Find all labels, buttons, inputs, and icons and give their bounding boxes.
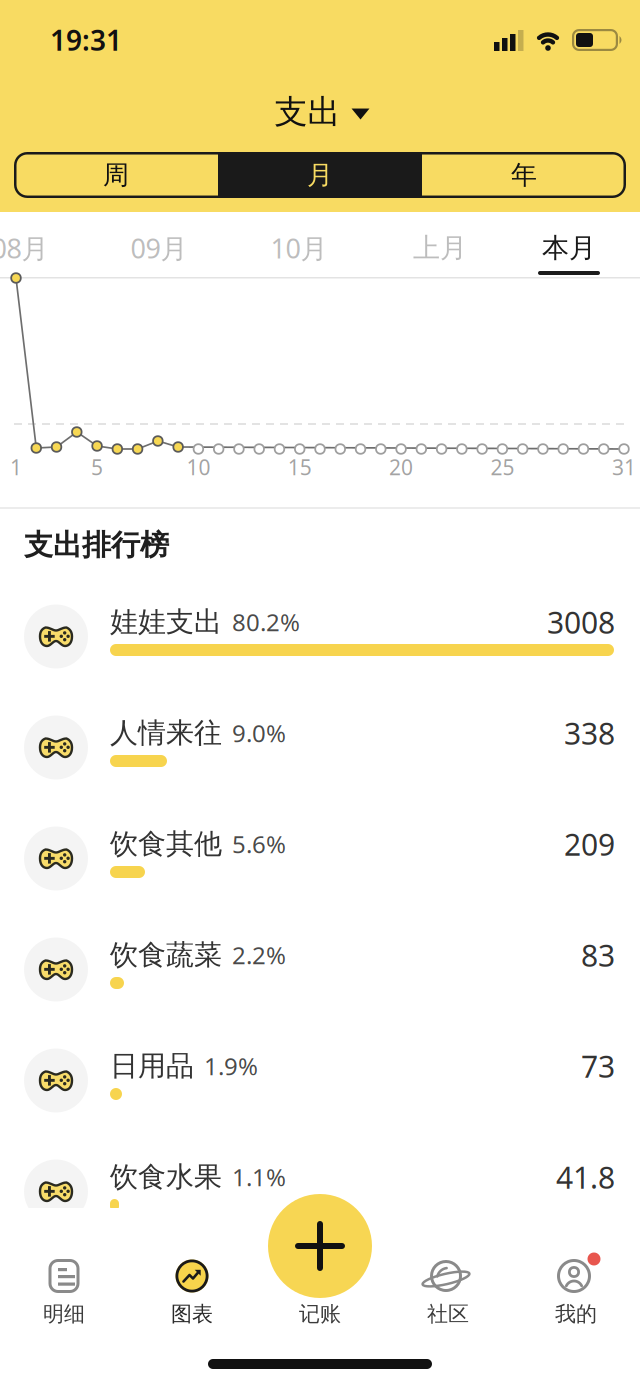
staticText: 09月 [130, 230, 187, 266]
staticText: 9.0% [232, 717, 286, 749]
staticText: 31 [612, 453, 636, 481]
staticText: 73 [581, 1046, 615, 1086]
staticText: 10 [186, 453, 210, 481]
button[interactable]: 年 [422, 152, 626, 198]
staticText: 19:31 [50, 21, 122, 59]
staticText: 25 [490, 453, 514, 481]
staticText: 我的 [555, 1301, 597, 1327]
button[interactable]: 支出 [274, 91, 369, 133]
button[interactable]: 社区 [384, 1208, 512, 1340]
staticText: 饮食其他 [110, 826, 222, 862]
button[interactable]: 饮食水果 [0, 1136, 640, 1247]
button[interactable]: 饮食蔬菜 [0, 914, 640, 1025]
staticText: 5.6% [232, 828, 286, 860]
button[interactable]: 08月 [0, 216, 72, 280]
staticText: 2.2% [232, 939, 286, 971]
button[interactable]: 09月 [107, 216, 211, 280]
button[interactable]: 娃娃支出 [0, 581, 640, 692]
staticText: 5 [91, 453, 103, 481]
staticText: 20 [389, 453, 413, 481]
staticText: 10月 [270, 230, 327, 266]
staticText: 记账 [299, 1301, 341, 1327]
staticText: 周 [103, 159, 129, 191]
button[interactable]: 本月 [517, 216, 621, 280]
staticText: 图表 [171, 1301, 213, 1327]
staticText: 本月 [542, 231, 596, 265]
staticText: 209 [564, 824, 615, 864]
staticText: 饮食水果 [110, 1159, 222, 1195]
staticText: 41.8 [556, 1157, 615, 1197]
button[interactable]: 日用品 [0, 1025, 640, 1136]
button[interactable]: 饮食其他 [0, 803, 640, 914]
staticText: 娃娃支出 [110, 604, 222, 640]
staticText: 338 [564, 713, 615, 753]
button[interactable]: 我的 [512, 1208, 640, 1340]
staticText: 日用品 [110, 1048, 194, 1084]
staticText: 明细 [43, 1301, 85, 1327]
button[interactable]: 图表 [128, 1208, 256, 1340]
staticText: 15 [288, 453, 312, 481]
staticText: 月 [307, 159, 333, 191]
button[interactable]: 人情来往 [0, 692, 640, 803]
staticText: 80.2% [232, 606, 300, 638]
staticText: 83 [581, 935, 615, 975]
staticText: 08月 [0, 230, 48, 266]
staticText: 3008 [547, 602, 615, 642]
button[interactable]: 上月 [388, 216, 492, 280]
staticText: 人情来往 [110, 715, 222, 751]
staticText: 社区 [427, 1301, 469, 1327]
staticText: 1.9% [204, 1050, 258, 1082]
staticText: 1 [10, 453, 22, 481]
button[interactable]: 周 [14, 152, 218, 198]
staticText: 支出 [274, 91, 340, 133]
button[interactable]: 记账 [268, 1194, 372, 1298]
staticText: 1.1% [232, 1161, 286, 1193]
button[interactable]: 明细 [0, 1208, 128, 1340]
staticText: 年 [511, 159, 537, 191]
button[interactable]: 月 [218, 152, 422, 198]
button[interactable]: 记账 [256, 1208, 384, 1340]
staticText: 饮食蔬菜 [110, 937, 222, 973]
staticText: 支出排行榜 [24, 527, 169, 563]
button[interactable]: 10月 [247, 216, 351, 280]
staticText: 上月 [413, 231, 467, 265]
